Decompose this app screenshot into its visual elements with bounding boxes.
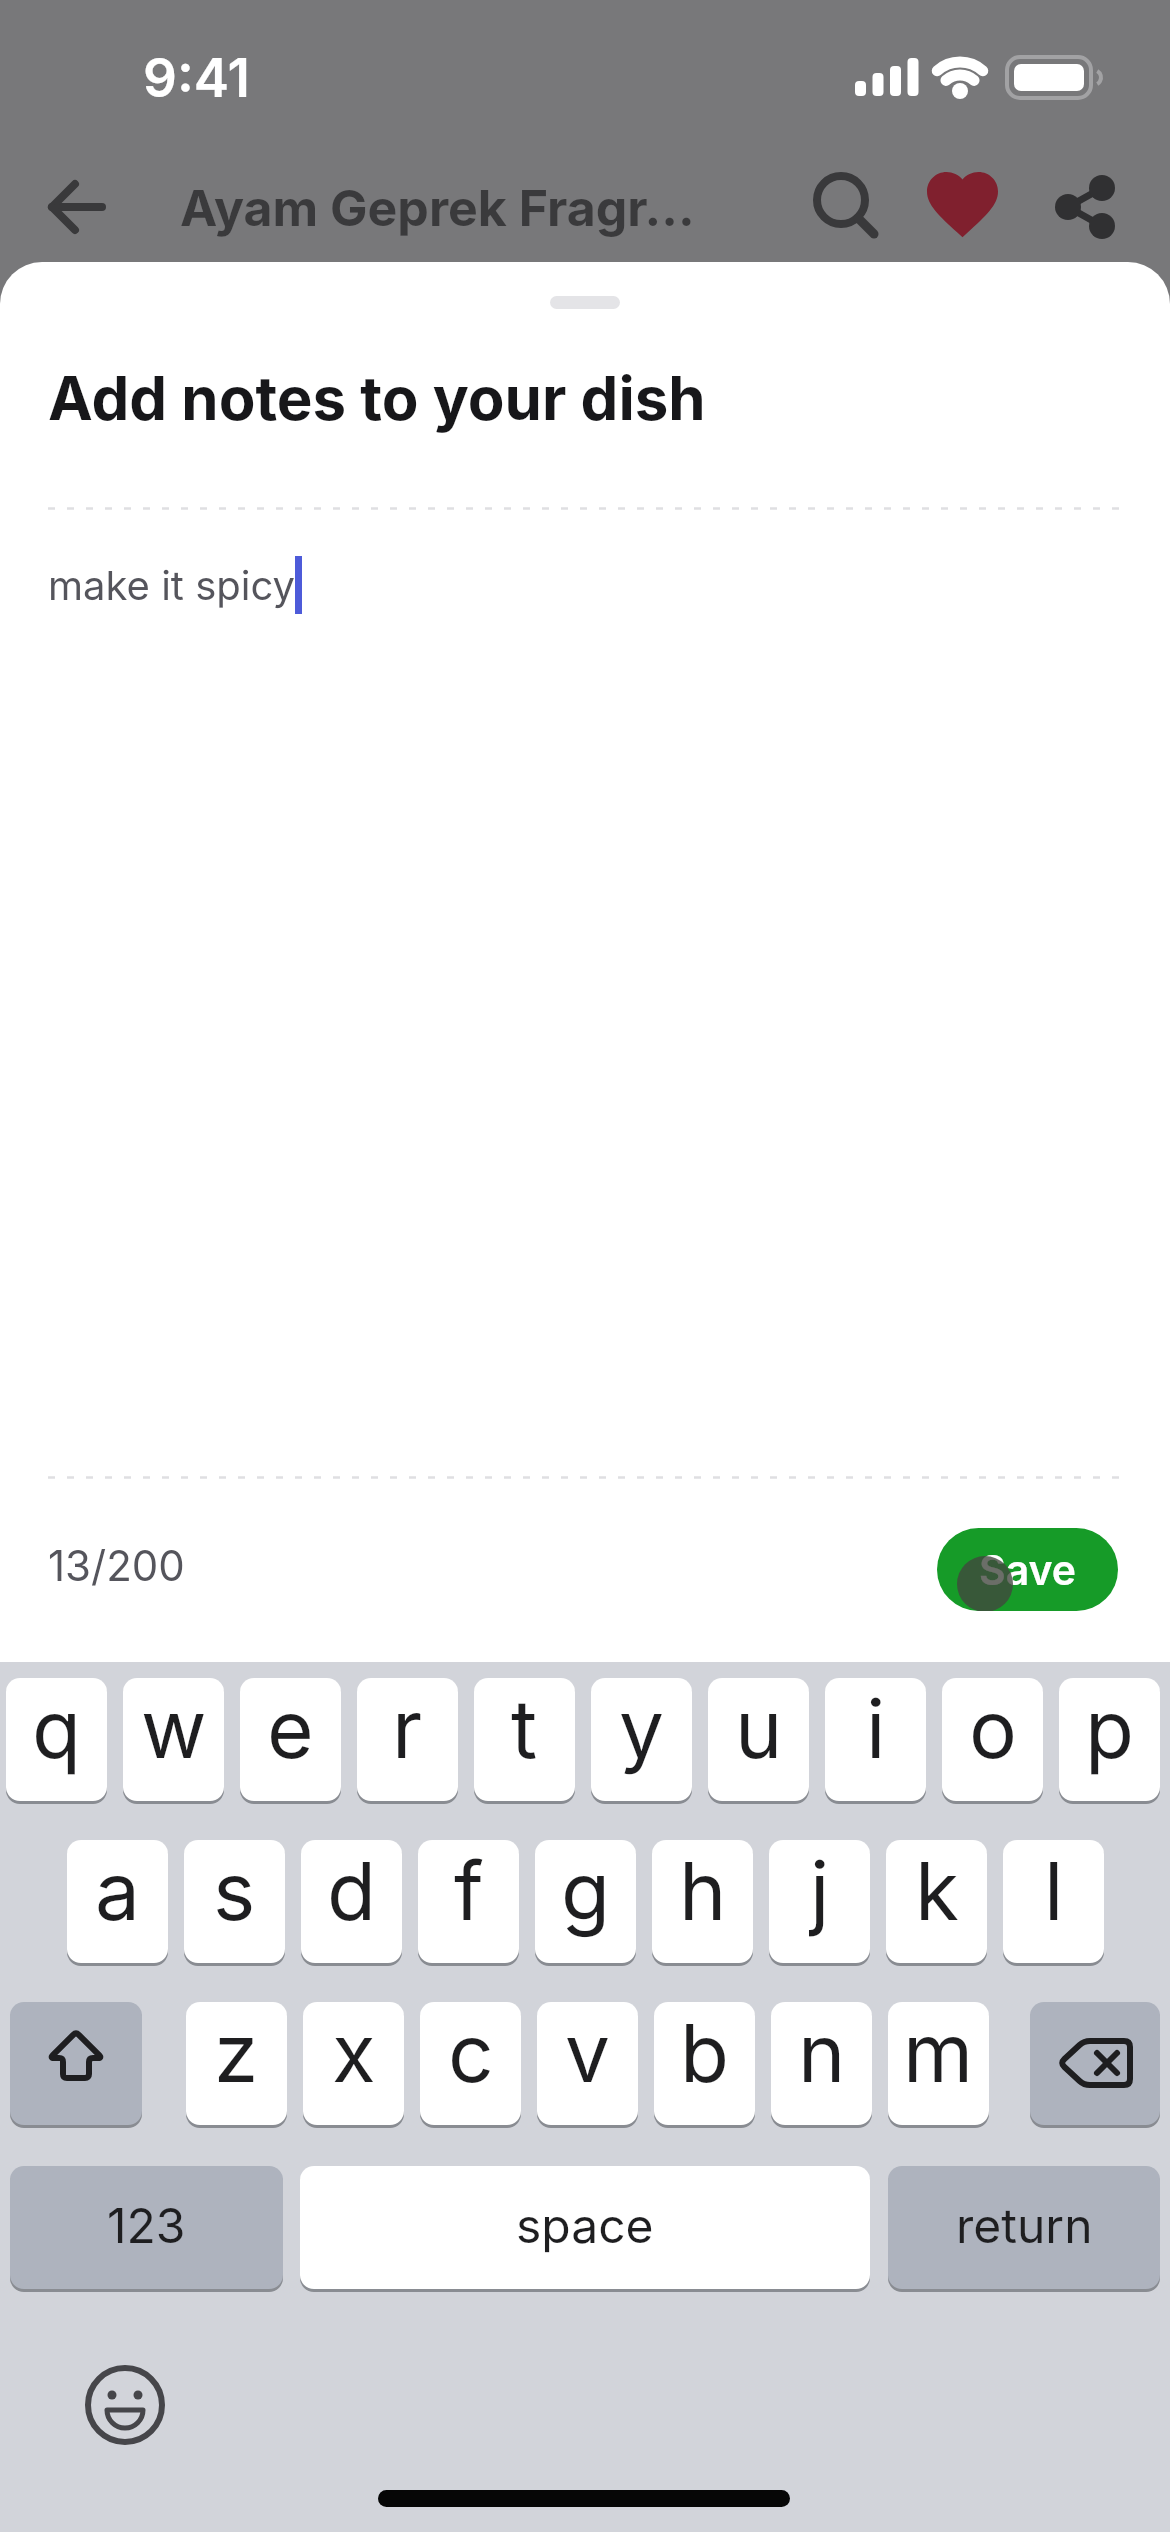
staticText: d (327, 1842, 376, 1939)
staticText: space (516, 2196, 654, 2254)
staticText: s (213, 1842, 256, 1939)
staticText: j (810, 1842, 830, 1939)
staticText: c (448, 2004, 494, 2101)
button[interactable]: x (303, 2002, 404, 2128)
button[interactable]: c (420, 2002, 521, 2128)
staticText: 13/200 (48, 1540, 185, 1591)
staticText: f (454, 1842, 484, 1939)
staticText: 123 (107, 2196, 186, 2254)
button[interactable]: t (474, 1678, 575, 1804)
staticText: e (267, 1680, 314, 1777)
staticText: g (561, 1842, 611, 1939)
button[interactable]: u (708, 1678, 809, 1804)
button[interactable]: o (942, 1678, 1043, 1804)
staticText: return (956, 2196, 1093, 2254)
button[interactable]: return (888, 2166, 1160, 2292)
button[interactable] (1030, 2002, 1160, 2128)
staticText: x (332, 2004, 376, 2101)
staticText: t (511, 1680, 538, 1777)
staticText: z (214, 2004, 259, 2101)
staticText: k (915, 1842, 959, 1939)
button[interactable]: y (591, 1678, 692, 1804)
button[interactable]: a (67, 1840, 168, 1966)
button[interactable] (10, 2002, 142, 2128)
button[interactable]: q (6, 1678, 107, 1804)
staticText: a (95, 1842, 140, 1939)
staticText: w (141, 1680, 207, 1777)
staticText: r (392, 1680, 423, 1777)
staticText: b (680, 2004, 729, 2101)
button[interactable]: h (652, 1840, 753, 1966)
button[interactable]: n (771, 2002, 872, 2128)
staticText: h (679, 1842, 727, 1939)
button[interactable]: 123 (10, 2166, 283, 2292)
button[interactable]: d (301, 1840, 402, 1966)
button[interactable]: j (769, 1840, 870, 1966)
button[interactable] (40, 177, 116, 237)
button[interactable] (85, 2365, 165, 2445)
staticText: Save (979, 1545, 1077, 1595)
button[interactable]: b (654, 2002, 755, 2128)
button[interactable]: w (123, 1678, 224, 1804)
staticText: Ayam Geprek Fragr... (180, 178, 695, 238)
button[interactable]: space (300, 2166, 870, 2292)
staticText: i (866, 1680, 886, 1777)
button[interactable]: z (186, 2002, 287, 2128)
button[interactable]: g (535, 1840, 636, 1966)
button[interactable]: l (1003, 1840, 1104, 1966)
button[interactable]: s (184, 1840, 285, 1966)
staticText: y (619, 1680, 664, 1777)
button[interactable]: r (357, 1678, 458, 1804)
button[interactable]: m (888, 2002, 989, 2128)
button[interactable] (920, 168, 1004, 244)
button[interactable]: p (1059, 1678, 1160, 1804)
staticText: m (903, 2004, 974, 2101)
staticText: o (969, 1680, 1017, 1777)
staticText: u (735, 1680, 783, 1777)
staticText: l (1044, 1842, 1064, 1939)
staticText: v (565, 2004, 610, 2101)
button[interactable]: f (418, 1840, 519, 1966)
staticText: p (1085, 1680, 1134, 1777)
staticText: 9:41 (143, 46, 250, 110)
button[interactable] (1048, 168, 1124, 244)
staticText: q (32, 1680, 81, 1777)
button[interactable]: i (825, 1678, 926, 1804)
button[interactable]: Save (937, 1528, 1118, 1611)
staticText: n (798, 2004, 846, 2101)
staticText: Add notes to your dish (48, 362, 706, 435)
button[interactable]: e (240, 1678, 341, 1804)
button[interactable] (812, 172, 880, 240)
button[interactable]: v (537, 2002, 638, 2128)
button[interactable]: k (886, 1840, 987, 1966)
staticText: make it spicy (48, 561, 295, 609)
